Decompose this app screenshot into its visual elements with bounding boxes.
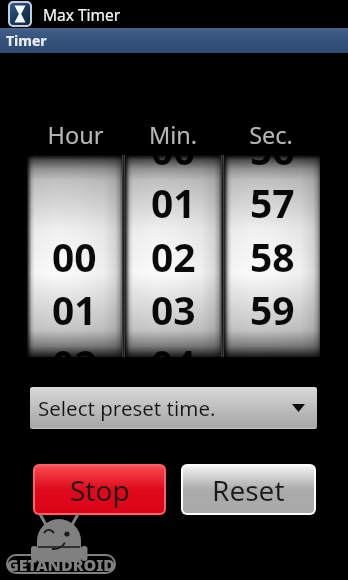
staticText: 01 bbox=[151, 176, 196, 220]
button[interactable]: Seconds bbox=[224, 155, 320, 357]
button[interactable]: Hours bbox=[27, 155, 122, 357]
staticText: 58 bbox=[250, 230, 295, 274]
staticText: Hour bbox=[27, 119, 124, 151]
staticText: 57 bbox=[250, 176, 295, 220]
staticText: Max Timer bbox=[43, 4, 121, 25]
staticText: 01 bbox=[52, 283, 97, 327]
staticText: 00 bbox=[151, 155, 196, 167]
button[interactable]: Timer bbox=[0, 28, 348, 53]
staticText: 59 bbox=[250, 283, 295, 327]
staticText: Reset bbox=[212, 471, 285, 509]
staticText: 56 bbox=[250, 155, 295, 167]
staticText: 03 bbox=[151, 283, 196, 327]
staticText: GETANDROID bbox=[7, 554, 116, 574]
button[interactable]: Minutes bbox=[125, 155, 221, 357]
button[interactable]: Select preset time. bbox=[30, 387, 317, 429]
staticText: Min. bbox=[124, 119, 222, 151]
staticText: 00 bbox=[52, 230, 97, 274]
staticText: Select preset time. bbox=[38, 394, 216, 422]
staticText: 02 bbox=[151, 230, 196, 274]
button[interactable]: Reset bbox=[183, 466, 314, 513]
staticText: 04 bbox=[151, 337, 196, 357]
staticText: 02 bbox=[52, 337, 97, 357]
button[interactable]: Stop bbox=[35, 466, 164, 513]
staticText: Sec. bbox=[222, 119, 320, 151]
staticText: Timer bbox=[6, 31, 47, 50]
staticText: Stop bbox=[70, 471, 130, 509]
